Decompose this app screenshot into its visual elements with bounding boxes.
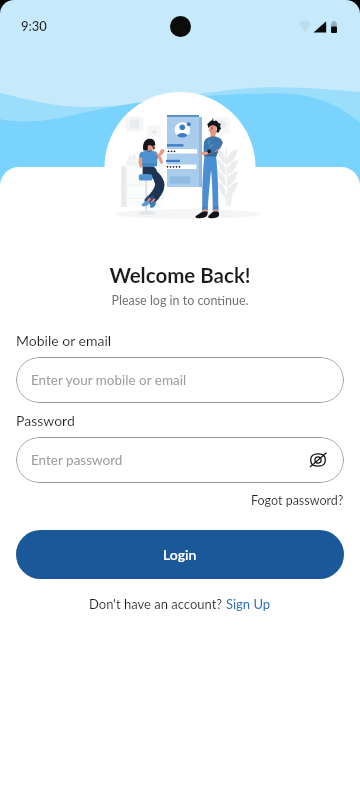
staticText: Enter password bbox=[31, 452, 123, 468]
button[interactable]: Enter password bbox=[16, 437, 344, 483]
staticText: Password bbox=[16, 412, 75, 429]
staticText: 9:30 bbox=[21, 18, 47, 34]
staticText: Fogot password? bbox=[251, 493, 344, 508]
button[interactable]: Fogot password? bbox=[251, 491, 344, 510]
staticText: Enter your mobile or email bbox=[31, 372, 187, 388]
staticText: Welcome Back! bbox=[0, 263, 360, 288]
staticText: Login bbox=[163, 546, 197, 563]
staticText: Please log in to continue. bbox=[0, 293, 360, 308]
staticText: Sign Up bbox=[226, 596, 271, 612]
button[interactable]: Show password bbox=[306, 448, 330, 472]
button[interactable]: Enter your mobile or email bbox=[16, 357, 344, 403]
staticText: Don't have an account? bbox=[89, 596, 226, 612]
button[interactable]: Don't have an account? bbox=[89, 594, 271, 614]
staticText: Mobile or email bbox=[16, 332, 112, 349]
button[interactable]: Login bbox=[16, 530, 344, 579]
